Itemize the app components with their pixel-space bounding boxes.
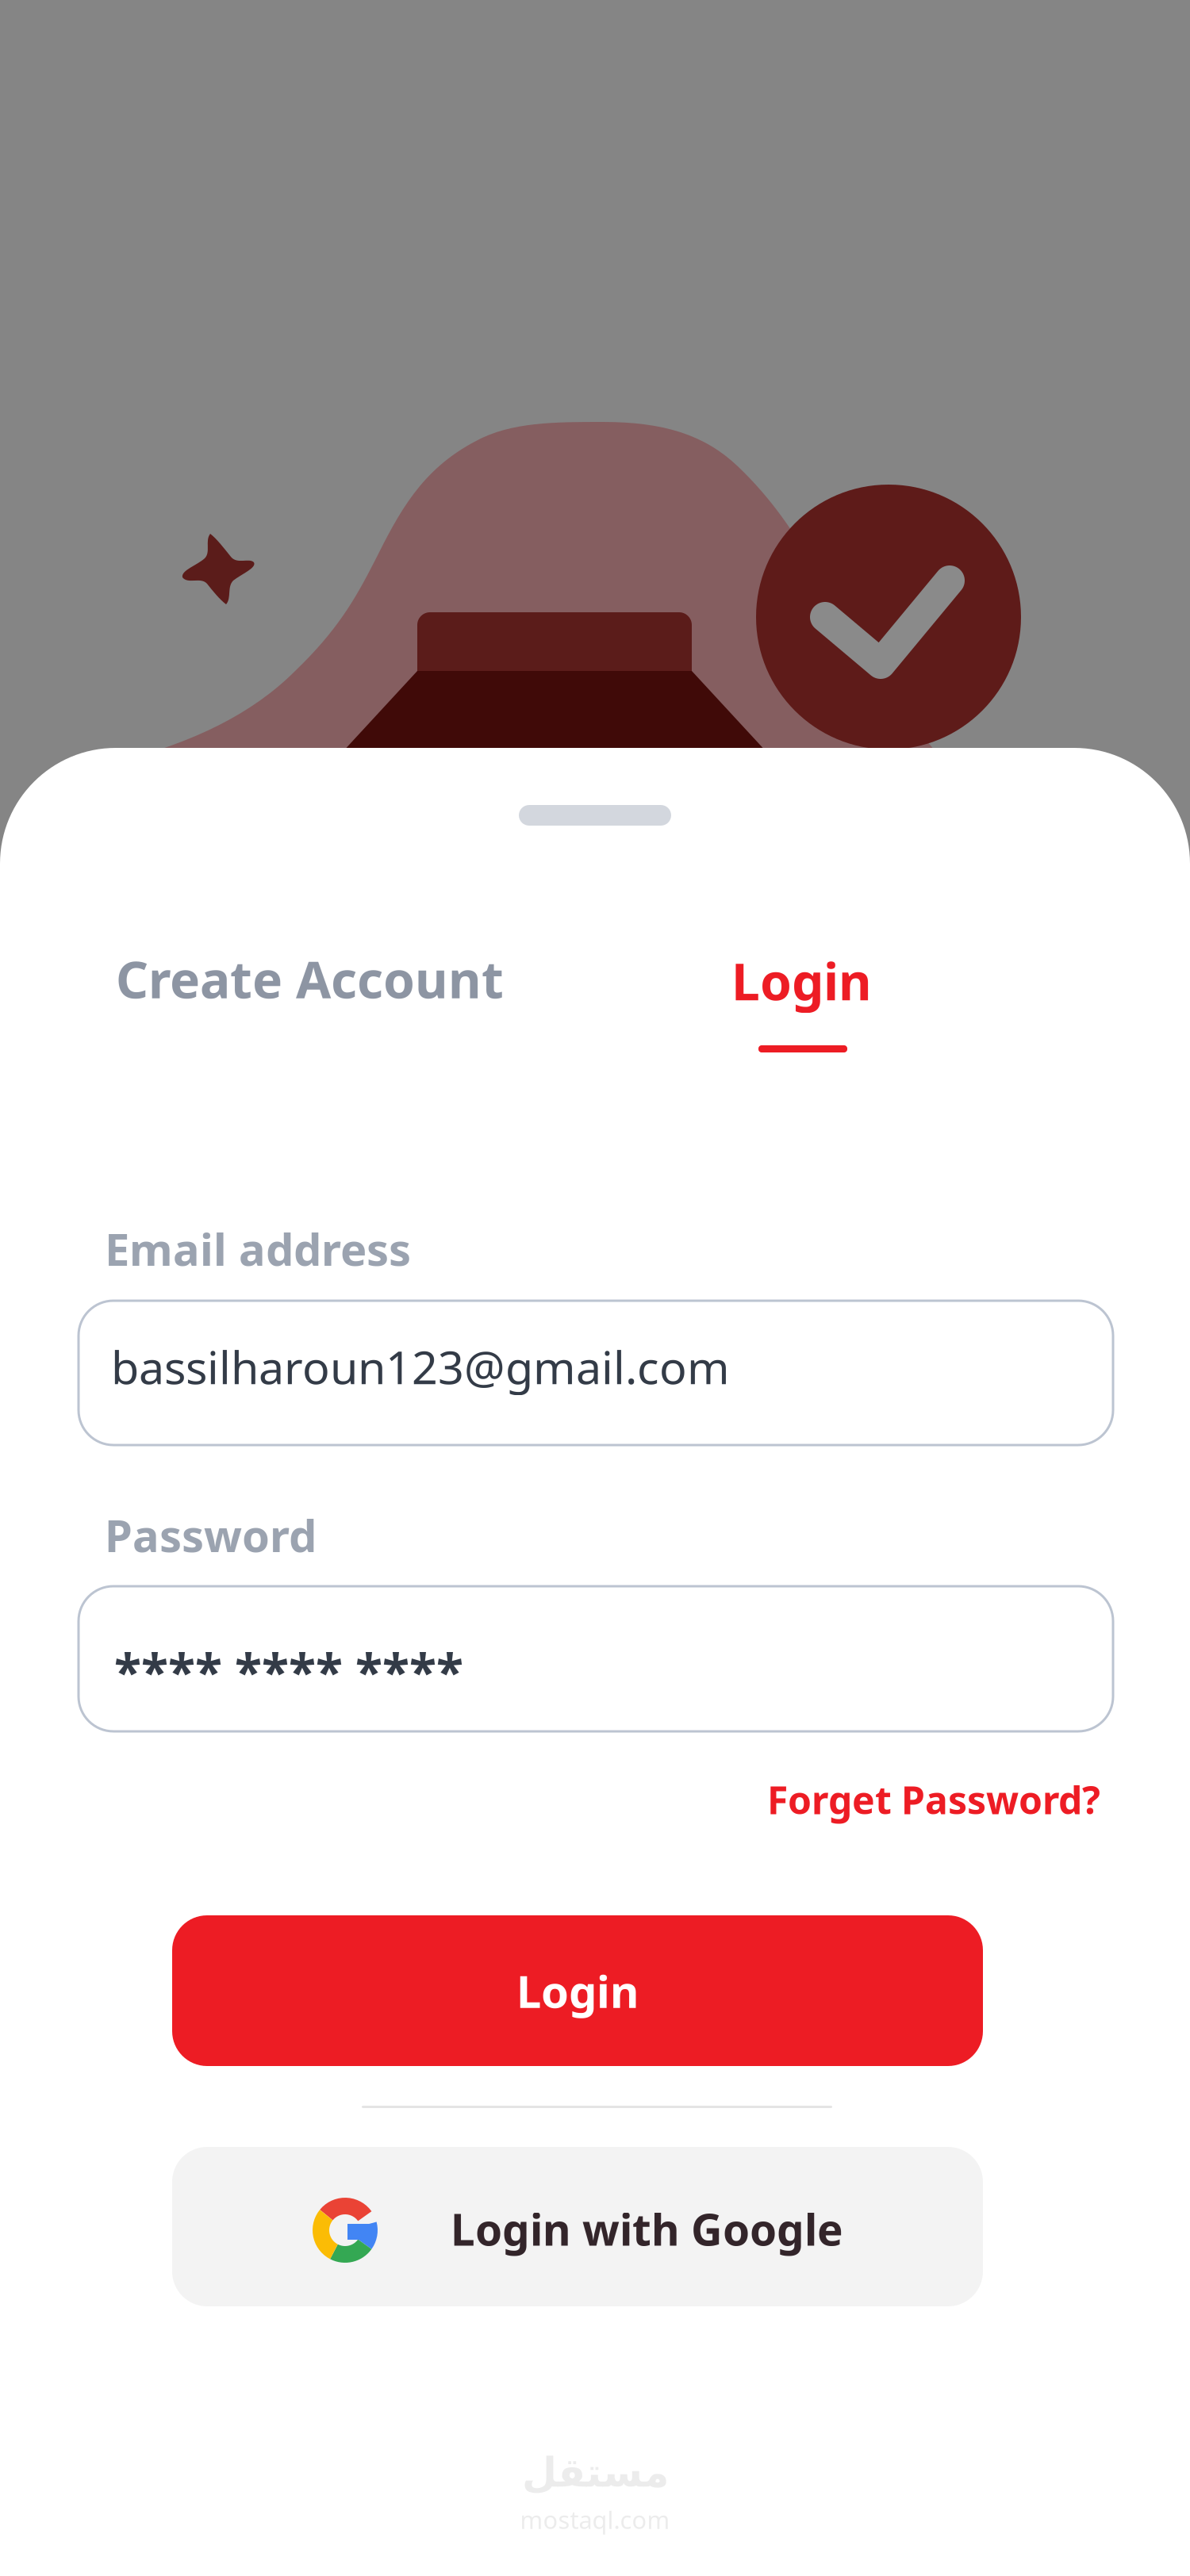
staticText: **** **** ****	[114, 1638, 463, 1704]
staticText: Create Account	[116, 945, 504, 1012]
staticText: مستقل	[522, 2450, 668, 2495]
button[interactable]: Forget Password?	[656, 1776, 1100, 1823]
button[interactable]: Login	[694, 947, 900, 1074]
button[interactable]: Login	[172, 1915, 983, 2066]
staticText: Forget Password?	[767, 1774, 1100, 1825]
staticText: Password	[105, 1505, 317, 1564]
staticText: Login	[516, 1961, 639, 2020]
button[interactable]: Login with Google	[172, 2147, 983, 2306]
staticText: mostaql.com	[520, 2503, 670, 2536]
button[interactable]: **** **** ****	[79, 1586, 1113, 1731]
staticText: Email address	[105, 1219, 411, 1278]
staticText: bassilharoun123@gmail.com	[111, 1336, 730, 1397]
staticText: Login	[731, 947, 872, 1014]
button[interactable]: bassilharoun123@gmail.com	[79, 1301, 1113, 1445]
staticText: Login with Google	[451, 2200, 843, 2258]
button[interactable]: Create Account	[116, 949, 512, 1008]
